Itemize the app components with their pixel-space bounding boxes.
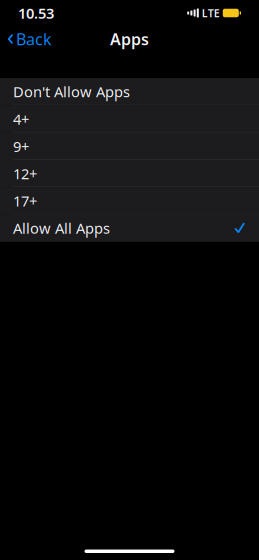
staticText: 9+ xyxy=(13,136,29,156)
staticText: LTE xyxy=(202,6,220,20)
staticText: 4+ xyxy=(13,109,29,129)
staticText: Allow All Apps xyxy=(13,218,110,238)
button[interactable]: 4+ xyxy=(0,105,259,133)
button[interactable]: 9+ xyxy=(0,133,259,160)
staticText: Back xyxy=(16,28,52,50)
button[interactable]: 17+ xyxy=(0,187,259,214)
staticText: 12+ xyxy=(13,164,37,183)
staticText: Apps xyxy=(110,28,149,50)
button[interactable]: Back xyxy=(0,23,59,55)
button[interactable]: Don't Allow Apps xyxy=(0,78,259,105)
button[interactable]: 12+ xyxy=(0,160,259,187)
staticText: 17+ xyxy=(13,191,37,211)
staticText: Don't Allow Apps xyxy=(13,82,130,101)
staticText: 10.53 xyxy=(18,3,54,23)
button[interactable]: Allow All Apps xyxy=(0,214,259,242)
